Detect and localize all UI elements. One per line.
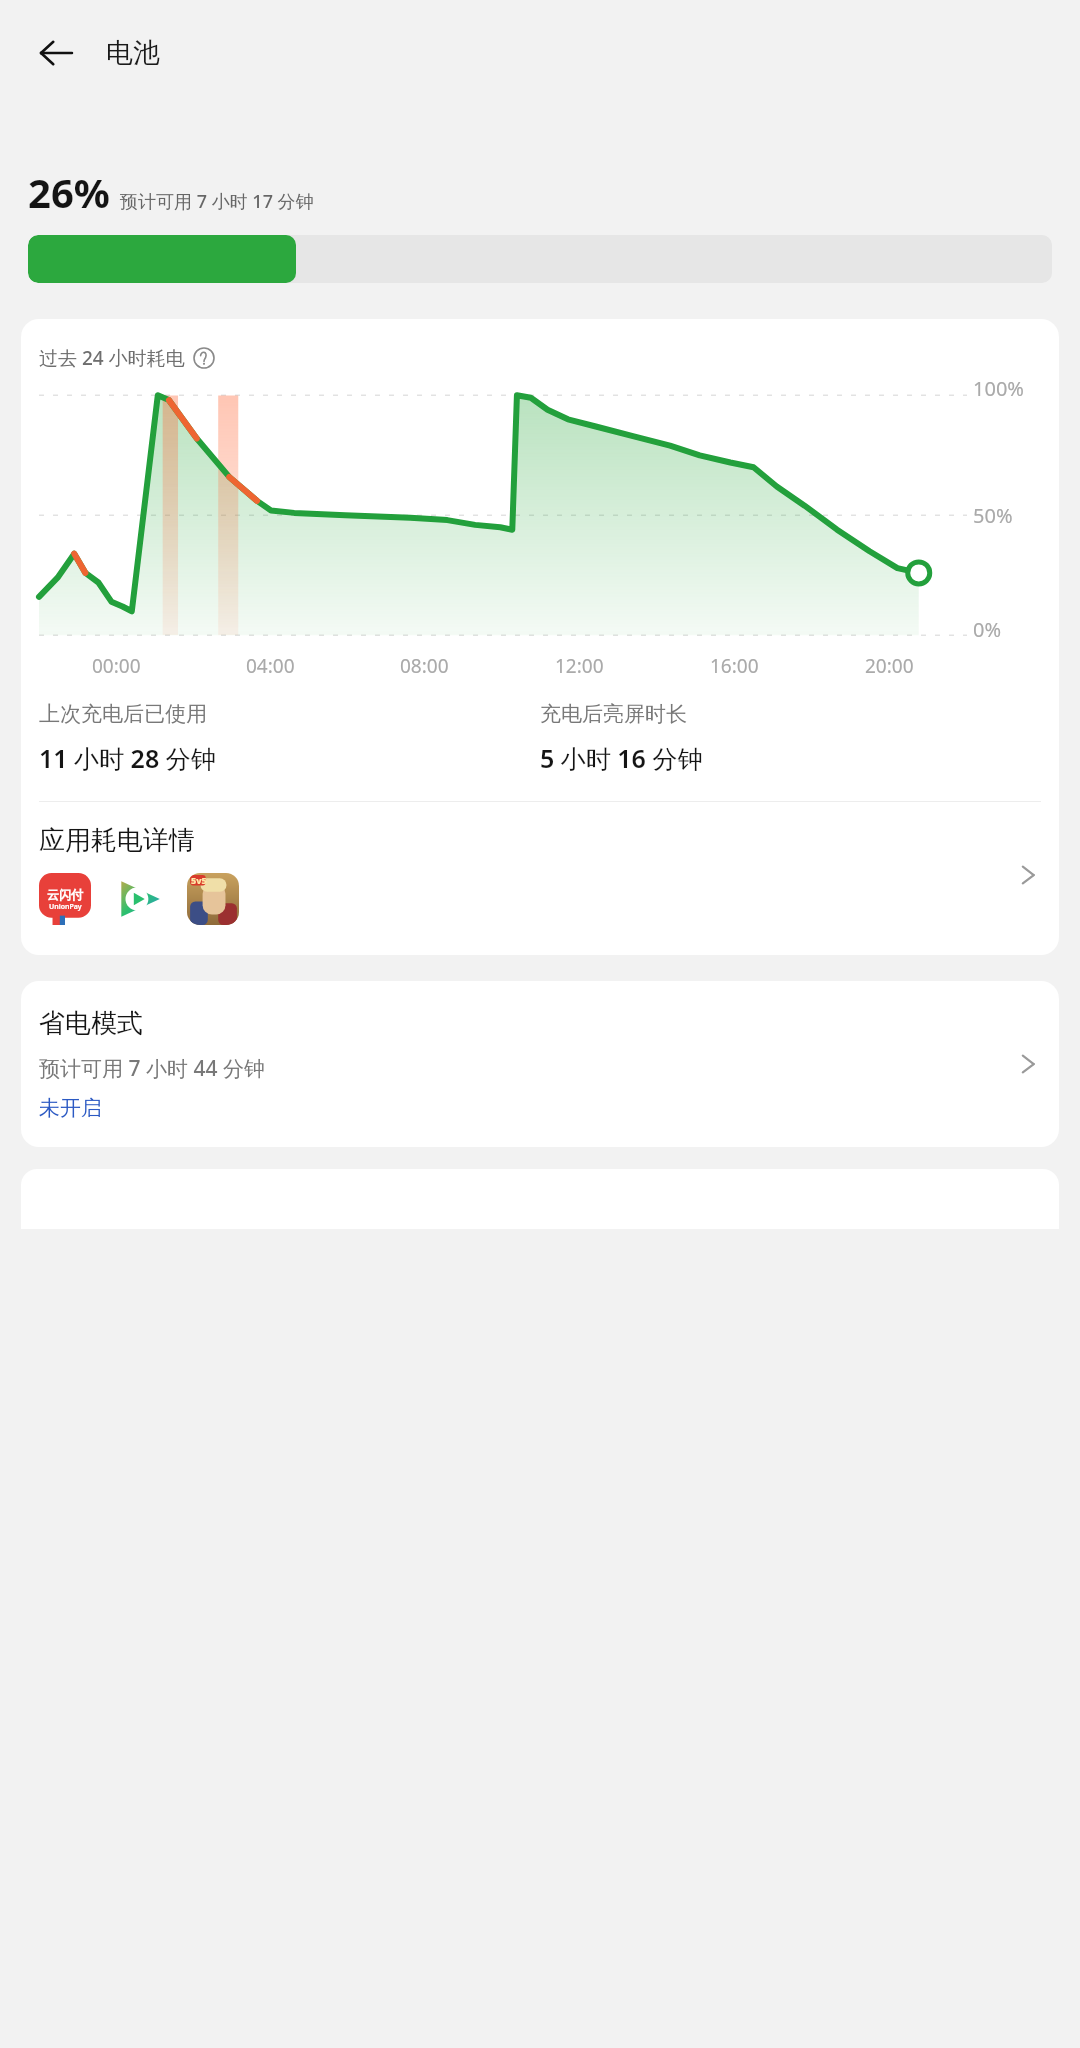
button[interactable]: 过去 24 小时耗电 xyxy=(39,345,215,371)
staticText: 充电后亮屏时长 xyxy=(540,701,687,727)
staticText: 100% xyxy=(973,375,1024,402)
staticText: 预计可用 7 小时 17 分钟 xyxy=(120,189,314,214)
staticText: 5 小时 16 分钟 xyxy=(540,741,703,775)
staticText: 20:00 xyxy=(865,653,914,679)
staticText: 应用耗电详情 xyxy=(39,824,195,857)
staticText: 电池 xyxy=(106,36,160,70)
button[interactable]: 应用耗电详情 xyxy=(21,802,1059,947)
staticText: 16:00 xyxy=(710,653,759,679)
staticText: 0% xyxy=(973,616,1002,643)
staticText: 上次充电后已使用 xyxy=(39,701,207,727)
other: 更多 xyxy=(1015,862,1041,888)
staticText: 08:00 xyxy=(400,653,449,679)
staticText: 26% xyxy=(28,165,110,219)
staticText: UnionPay xyxy=(49,902,82,912)
staticText: 04:00 xyxy=(246,653,295,679)
staticText: 云闪付 xyxy=(47,887,83,902)
button[interactable]: 省电模式 xyxy=(21,981,1059,1147)
staticText: 00:00 xyxy=(92,653,141,679)
other: 帮助 xyxy=(193,347,215,369)
other: 更多 xyxy=(1015,1051,1041,1077)
staticText: 50% xyxy=(973,502,1013,529)
staticText: 12:00 xyxy=(555,653,604,679)
staticText: 省电模式 xyxy=(39,1007,143,1040)
staticText: 11 小时 28 分钟 xyxy=(39,741,216,775)
staticText: 未开启 xyxy=(39,1095,102,1121)
staticText: 过去 24 小时耗电 xyxy=(39,345,185,371)
button[interactable]: Back xyxy=(28,25,84,81)
staticText: 预计可用 7 小时 44 分钟 xyxy=(39,1054,265,1083)
staticText: 5v5 xyxy=(191,874,207,886)
